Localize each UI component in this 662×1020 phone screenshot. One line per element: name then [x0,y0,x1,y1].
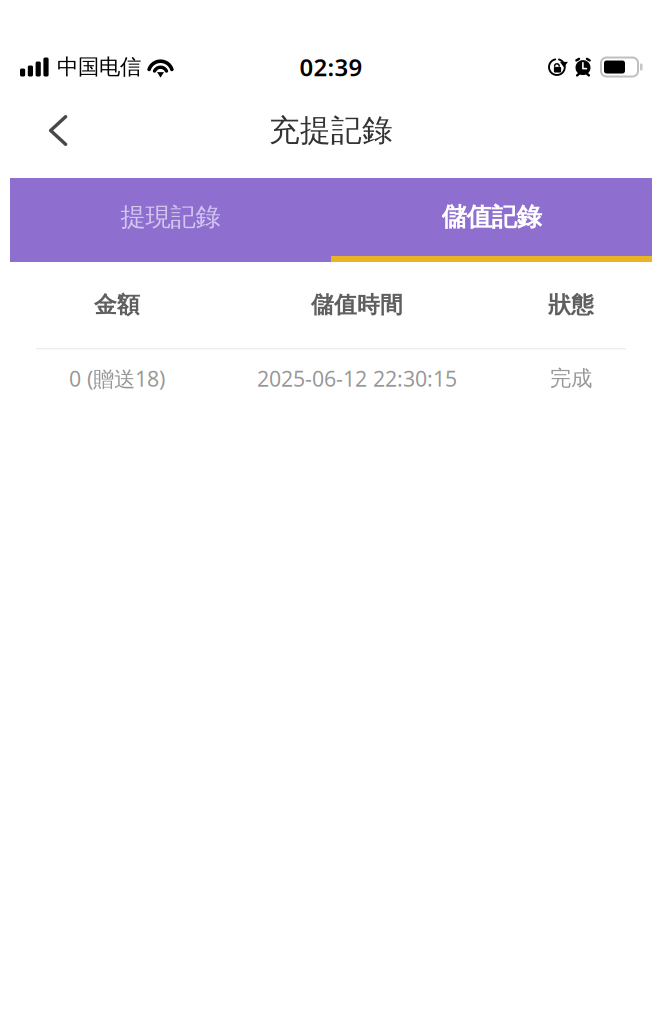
staticText: 0 (贈送18) [69,364,165,392]
button[interactable]: 提現記錄 [10,178,331,262]
staticText: 2025-06-12 22:30:15 [257,364,457,392]
button[interactable]: Back [0,96,94,160]
staticText: 狀態 [548,291,594,319]
staticText: 儲值時間 [311,291,403,319]
staticText: 金額 [94,291,140,319]
staticText: 中国电信 [57,54,141,80]
staticText: 02:39 [299,51,362,83]
staticText: 儲值記錄 [441,201,541,232]
staticText: 提現記錄 [120,201,220,232]
staticText: 完成 [550,365,592,391]
staticText: 充提記錄 [269,112,393,149]
button[interactable]: 儲值記錄 [331,178,652,262]
